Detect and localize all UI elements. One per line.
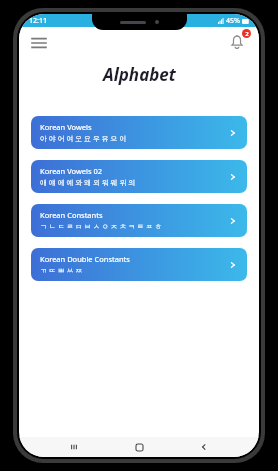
button[interactable]: Home [129,437,149,457]
staticText: 2 [245,30,249,38]
staticText: Korean Constants [40,210,103,220]
button[interactable]: Recents [64,437,84,457]
staticText: Korean Double Constants [40,254,130,264]
button[interactable]: Notifications [225,30,249,54]
staticText: 애 얘 에 예 와 왜 외 워 웨 위 의 [40,178,136,188]
button[interactable]: Korean Constants [31,204,247,237]
button[interactable]: Back [194,437,214,457]
staticText: Korean Vowels [40,122,92,132]
button[interactable]: Korean Double Constants [31,248,247,281]
staticText: 12:11 [29,16,47,26]
staticText: Alphabet [103,63,176,86]
button[interactable]: Korean Vowels [31,116,247,149]
staticText: 아 야 어 여 오 요 우 유 으 이 [40,134,127,144]
staticText: ㄲ ㄸ ㅃ ㅆ ㅉ [40,266,83,276]
staticText: 45% [226,16,240,26]
staticText: ㄱ ㄴ ㄷ ㄹ ㅁ ㅂ ㅅ ㅇ ㅈ ㅊ ㅋ ㅌ ㅍ ㅎ [40,222,162,232]
staticText: Korean Vowels 02 [40,166,103,176]
button[interactable]: Korean Vowels 02 [31,160,247,193]
button[interactable]: Menu [27,30,51,54]
